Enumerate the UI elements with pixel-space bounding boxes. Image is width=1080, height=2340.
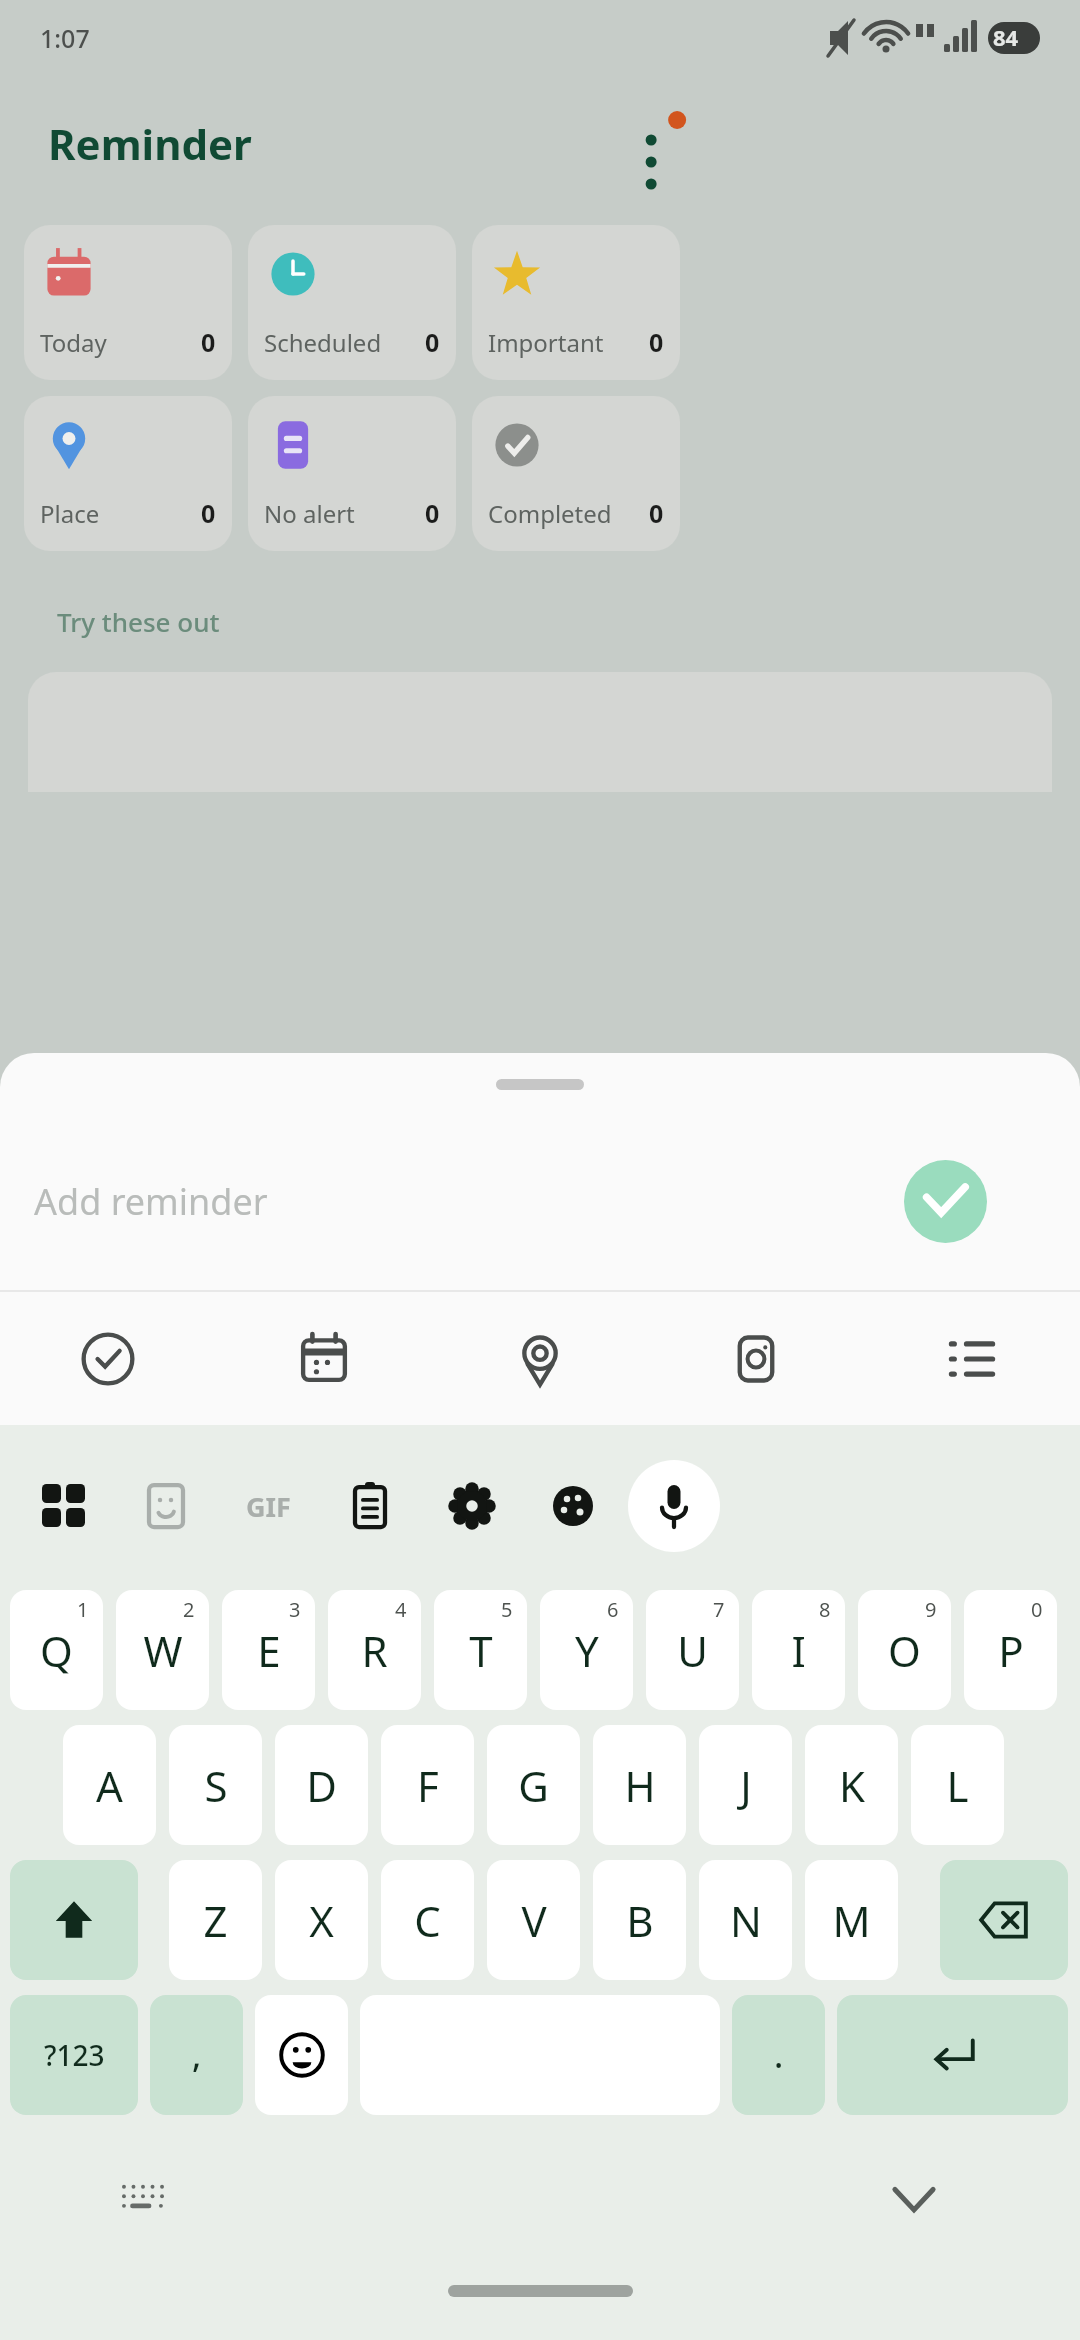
staticText: 0 <box>425 325 440 359</box>
button[interactable]: S <box>169 1725 262 1845</box>
button[interactable]: R <box>328 1590 421 1710</box>
staticText: L <box>946 1757 969 1814</box>
button[interactable]: Clipboard <box>326 1460 414 1552</box>
button[interactable]: A <box>63 1725 156 1845</box>
staticText: 2 <box>183 1596 195 1623</box>
button[interactable]: No alert <box>248 396 456 551</box>
staticText: GIF <box>246 1488 291 1525</box>
button[interactable]: O <box>858 1590 951 1710</box>
button[interactable]: H <box>593 1725 686 1845</box>
button[interactable]: Switch keyboard <box>115 2170 171 2226</box>
button[interactable]: Voice input <box>628 1460 720 1552</box>
button[interactable]: Place <box>432 1292 648 1425</box>
staticText: A <box>96 1757 123 1814</box>
button[interactable]: C <box>381 1860 474 1980</box>
button[interactable]: , <box>150 1995 243 2115</box>
staticText: 4 <box>395 1596 407 1623</box>
staticText: . <box>774 2032 784 2078</box>
staticText: U <box>677 1622 708 1679</box>
button[interactable]: Shift <box>10 1860 138 1980</box>
button[interactable]: Today <box>24 225 232 380</box>
staticText: 0 <box>425 496 440 530</box>
button[interactable]: Place <box>24 396 232 551</box>
staticText: Today <box>40 326 107 359</box>
staticText: 0 <box>649 325 664 359</box>
button[interactable]: Settings <box>428 1460 516 1552</box>
button[interactable]: Backspace <box>940 1860 1068 1980</box>
staticText: Add reminder <box>34 1177 268 1226</box>
staticText: No alert <box>264 497 355 530</box>
staticText: Reminder <box>48 115 252 172</box>
button[interactable]: Themes <box>530 1460 618 1552</box>
button[interactable]: D <box>275 1725 368 1845</box>
staticText: 0 <box>1031 1596 1043 1623</box>
staticText: 5 <box>501 1596 513 1623</box>
staticText: 3 <box>289 1596 301 1623</box>
button[interactable]: Y <box>540 1590 633 1710</box>
staticText: X <box>309 1892 334 1949</box>
button[interactable]: M <box>805 1860 898 1980</box>
staticText: V <box>521 1892 547 1949</box>
button[interactable]: Z <box>169 1860 262 1980</box>
button[interactable]: E <box>222 1590 315 1710</box>
staticText: I <box>791 1622 806 1679</box>
staticText: Scheduled <box>264 326 382 359</box>
button[interactable]: Save reminder <box>904 1160 987 1243</box>
button[interactable]: P <box>964 1590 1057 1710</box>
button[interactable]: V <box>487 1860 580 1980</box>
staticText: C <box>414 1892 441 1949</box>
button[interactable]: Complete <box>0 1292 216 1425</box>
button[interactable]: GIF <box>224 1460 312 1552</box>
staticText: T <box>469 1622 493 1679</box>
staticText: , <box>192 2032 202 2078</box>
button[interactable]: Q <box>10 1590 103 1710</box>
button[interactable]: Keyboard modes <box>20 1460 108 1552</box>
button[interactable]: I <box>752 1590 845 1710</box>
staticText: 6 <box>607 1596 619 1623</box>
button[interactable]: Important <box>472 225 680 380</box>
staticText: G <box>518 1757 549 1814</box>
button[interactable]: Emoji <box>255 1995 348 2115</box>
button[interactable]: Scheduled <box>248 225 456 380</box>
button[interactable]: Stickers <box>122 1460 210 1552</box>
button[interactable]: F <box>381 1725 474 1845</box>
staticText: E <box>257 1622 281 1679</box>
staticText: 0 <box>201 325 216 359</box>
staticText: Place <box>40 497 100 530</box>
button[interactable]: W <box>116 1590 209 1710</box>
staticText: ?123 <box>44 2036 105 2074</box>
staticText: Important <box>488 326 604 359</box>
button[interactable]: U <box>646 1590 739 1710</box>
staticText: 84 <box>993 22 1019 52</box>
staticText: O <box>888 1622 921 1679</box>
staticText: Completed <box>488 497 612 530</box>
staticText: K <box>839 1757 865 1814</box>
button[interactable]: Enter <box>837 1995 1068 2115</box>
button[interactable]: . <box>732 1995 825 2115</box>
button[interactable]: T <box>434 1590 527 1710</box>
staticText: Y <box>575 1622 599 1679</box>
button[interactable]: L <box>911 1725 1004 1845</box>
button[interactable]: X <box>275 1860 368 1980</box>
button[interactable]: More options <box>608 98 696 186</box>
staticText: F <box>417 1757 439 1814</box>
button[interactable]: Add reminder <box>0 1117 1080 1289</box>
button[interactable]: Date <box>216 1292 432 1425</box>
button[interactable]: B <box>593 1860 686 1980</box>
button[interactable]: K <box>805 1725 898 1845</box>
button[interactable]: G <box>487 1725 580 1845</box>
staticText: 7 <box>713 1596 725 1623</box>
staticText: D <box>306 1757 337 1814</box>
button[interactable]: ?123 <box>10 1995 138 2115</box>
staticText: H <box>624 1757 656 1814</box>
button[interactable]: J <box>699 1725 792 1845</box>
button[interactable]: Hide keyboard <box>880 2165 948 2233</box>
button[interactable]: Camera <box>648 1292 864 1425</box>
button[interactable]: List <box>864 1292 1080 1425</box>
staticText: 1 <box>77 1596 89 1623</box>
staticText: 8 <box>819 1596 831 1623</box>
staticText: M <box>832 1892 871 1949</box>
button[interactable]: N <box>699 1860 792 1980</box>
button[interactable]: Completed <box>472 396 680 551</box>
